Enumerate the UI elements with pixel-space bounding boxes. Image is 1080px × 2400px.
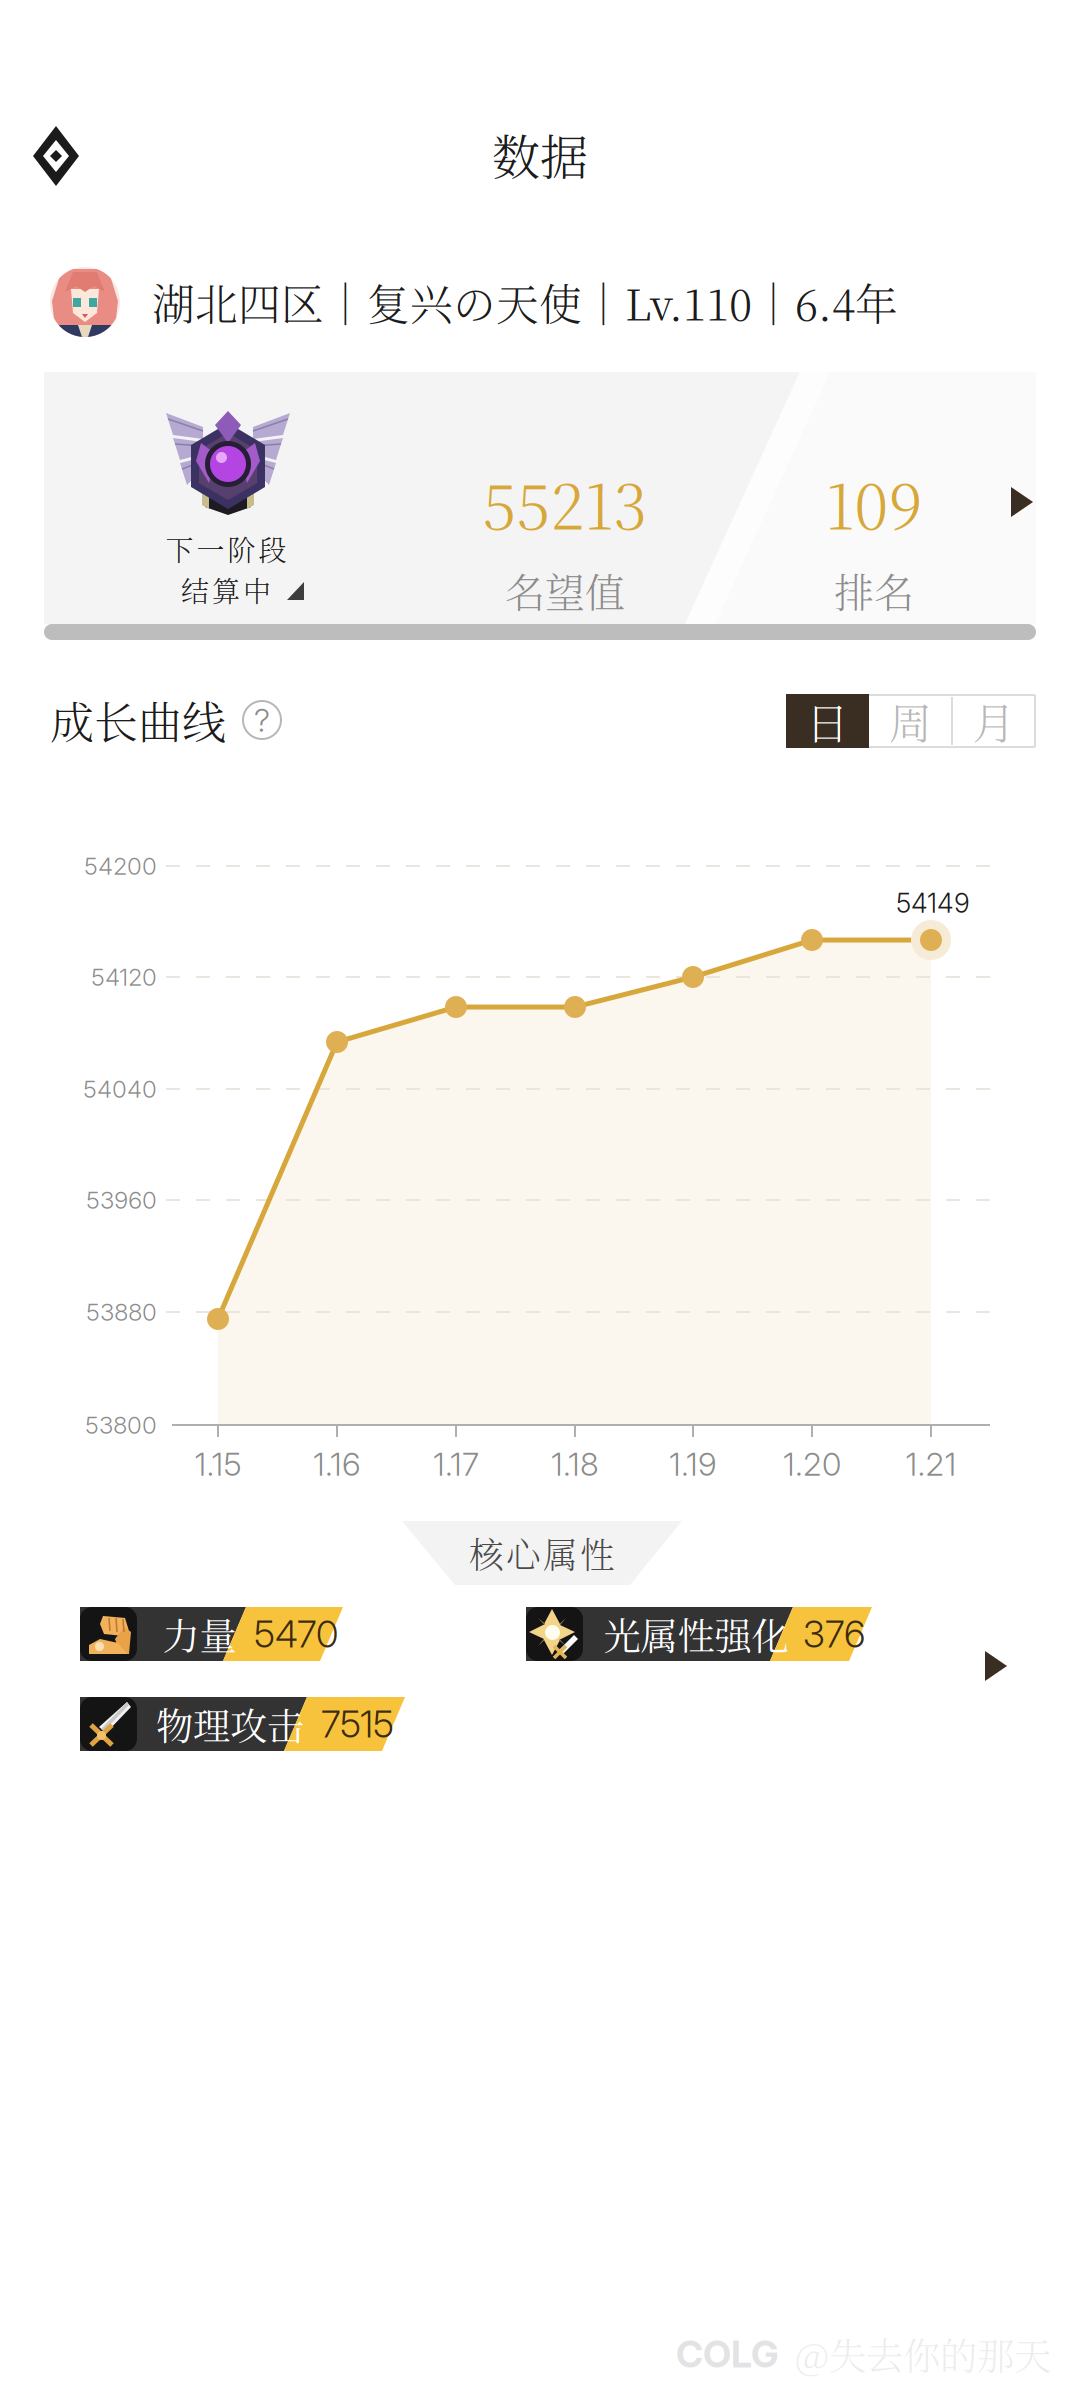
- staticText: 1.21: [905, 1445, 956, 1483]
- staticText: 周: [889, 690, 932, 752]
- button[interactable]: 光属性强化: [526, 1607, 872, 1661]
- staticText: 53880: [86, 1297, 157, 1326]
- staticText: COLG: [676, 2331, 779, 2377]
- staticText: 力量: [162, 1607, 236, 1661]
- button[interactable]: 力量: [80, 1607, 343, 1661]
- staticText: 1.17: [433, 1445, 479, 1483]
- staticText: ?: [254, 701, 270, 739]
- staticText: 下一阶段: [165, 529, 286, 569]
- staticText: 数据: [492, 119, 588, 188]
- staticText: 排名: [834, 561, 914, 619]
- button[interactable]: 湖北四区｜复兴の天使｜Lv.110｜6.4年: [50, 264, 1050, 340]
- staticText: 月: [972, 690, 1015, 752]
- button[interactable]: 周: [869, 694, 952, 748]
- staticText: 物理攻击: [156, 1697, 304, 1751]
- staticText: 55213: [482, 459, 647, 547]
- staticText: 1.19: [669, 1445, 717, 1483]
- staticText: 结算中: [181, 570, 271, 610]
- staticText: 54040: [83, 1074, 157, 1103]
- staticText: 1.20: [783, 1445, 841, 1483]
- button[interactable]: Help: [243, 701, 281, 739]
- staticText: 54200: [84, 851, 157, 880]
- staticText: @失去你的那天: [795, 2327, 1051, 2381]
- staticText: 日: [806, 690, 849, 752]
- staticText: 53800: [85, 1410, 157, 1439]
- staticText: 53960: [86, 1185, 157, 1214]
- staticText: 光属性强化: [603, 1607, 788, 1661]
- staticText: 109: [825, 459, 922, 547]
- staticText: 1.16: [313, 1445, 361, 1483]
- staticText: 5470: [254, 1611, 338, 1657]
- staticText: 成长曲线: [50, 688, 226, 752]
- staticText: 湖北四区｜复兴の天使｜Lv.110｜6.4年: [152, 271, 898, 333]
- staticText: 核心属性: [469, 1528, 615, 1578]
- staticText: 7515: [321, 1701, 394, 1747]
- staticText: 376: [803, 1611, 865, 1657]
- staticText: 54120: [91, 962, 157, 991]
- staticText: 54149: [896, 887, 970, 919]
- button[interactable]: 月: [952, 694, 1036, 748]
- staticText: 1.18: [551, 1445, 599, 1483]
- button[interactable]: 下一阶段: [44, 372, 1036, 624]
- button[interactable]: Back: [9, 102, 103, 210]
- staticText: 1.15: [194, 1445, 241, 1483]
- staticText: 名望值: [505, 561, 625, 619]
- button[interactable]: 日: [786, 694, 869, 748]
- button[interactable]: 物理攻击: [80, 1697, 405, 1751]
- button[interactable]: More attributes: [984, 1650, 1008, 1682]
